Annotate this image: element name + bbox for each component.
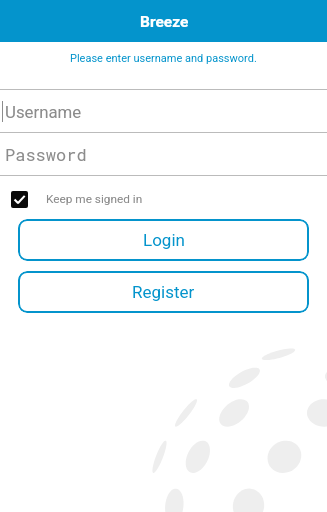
staticText: Please enter username and password.: [70, 52, 257, 65]
button[interactable]: Password: [0, 133, 327, 175]
staticText: Username: [5, 102, 82, 122]
button[interactable]: Keep me signed in: [0, 182, 327, 216]
button[interactable]: Login: [18, 219, 309, 261]
button[interactable]: Username: [0, 90, 327, 132]
button[interactable]: Register: [18, 271, 309, 313]
staticText: Login: [143, 230, 185, 250]
staticText: Password: [5, 143, 87, 165]
staticText: Keep me signed in: [46, 192, 143, 206]
staticText: Register: [132, 282, 195, 302]
staticText: Breeze: [140, 13, 189, 31]
